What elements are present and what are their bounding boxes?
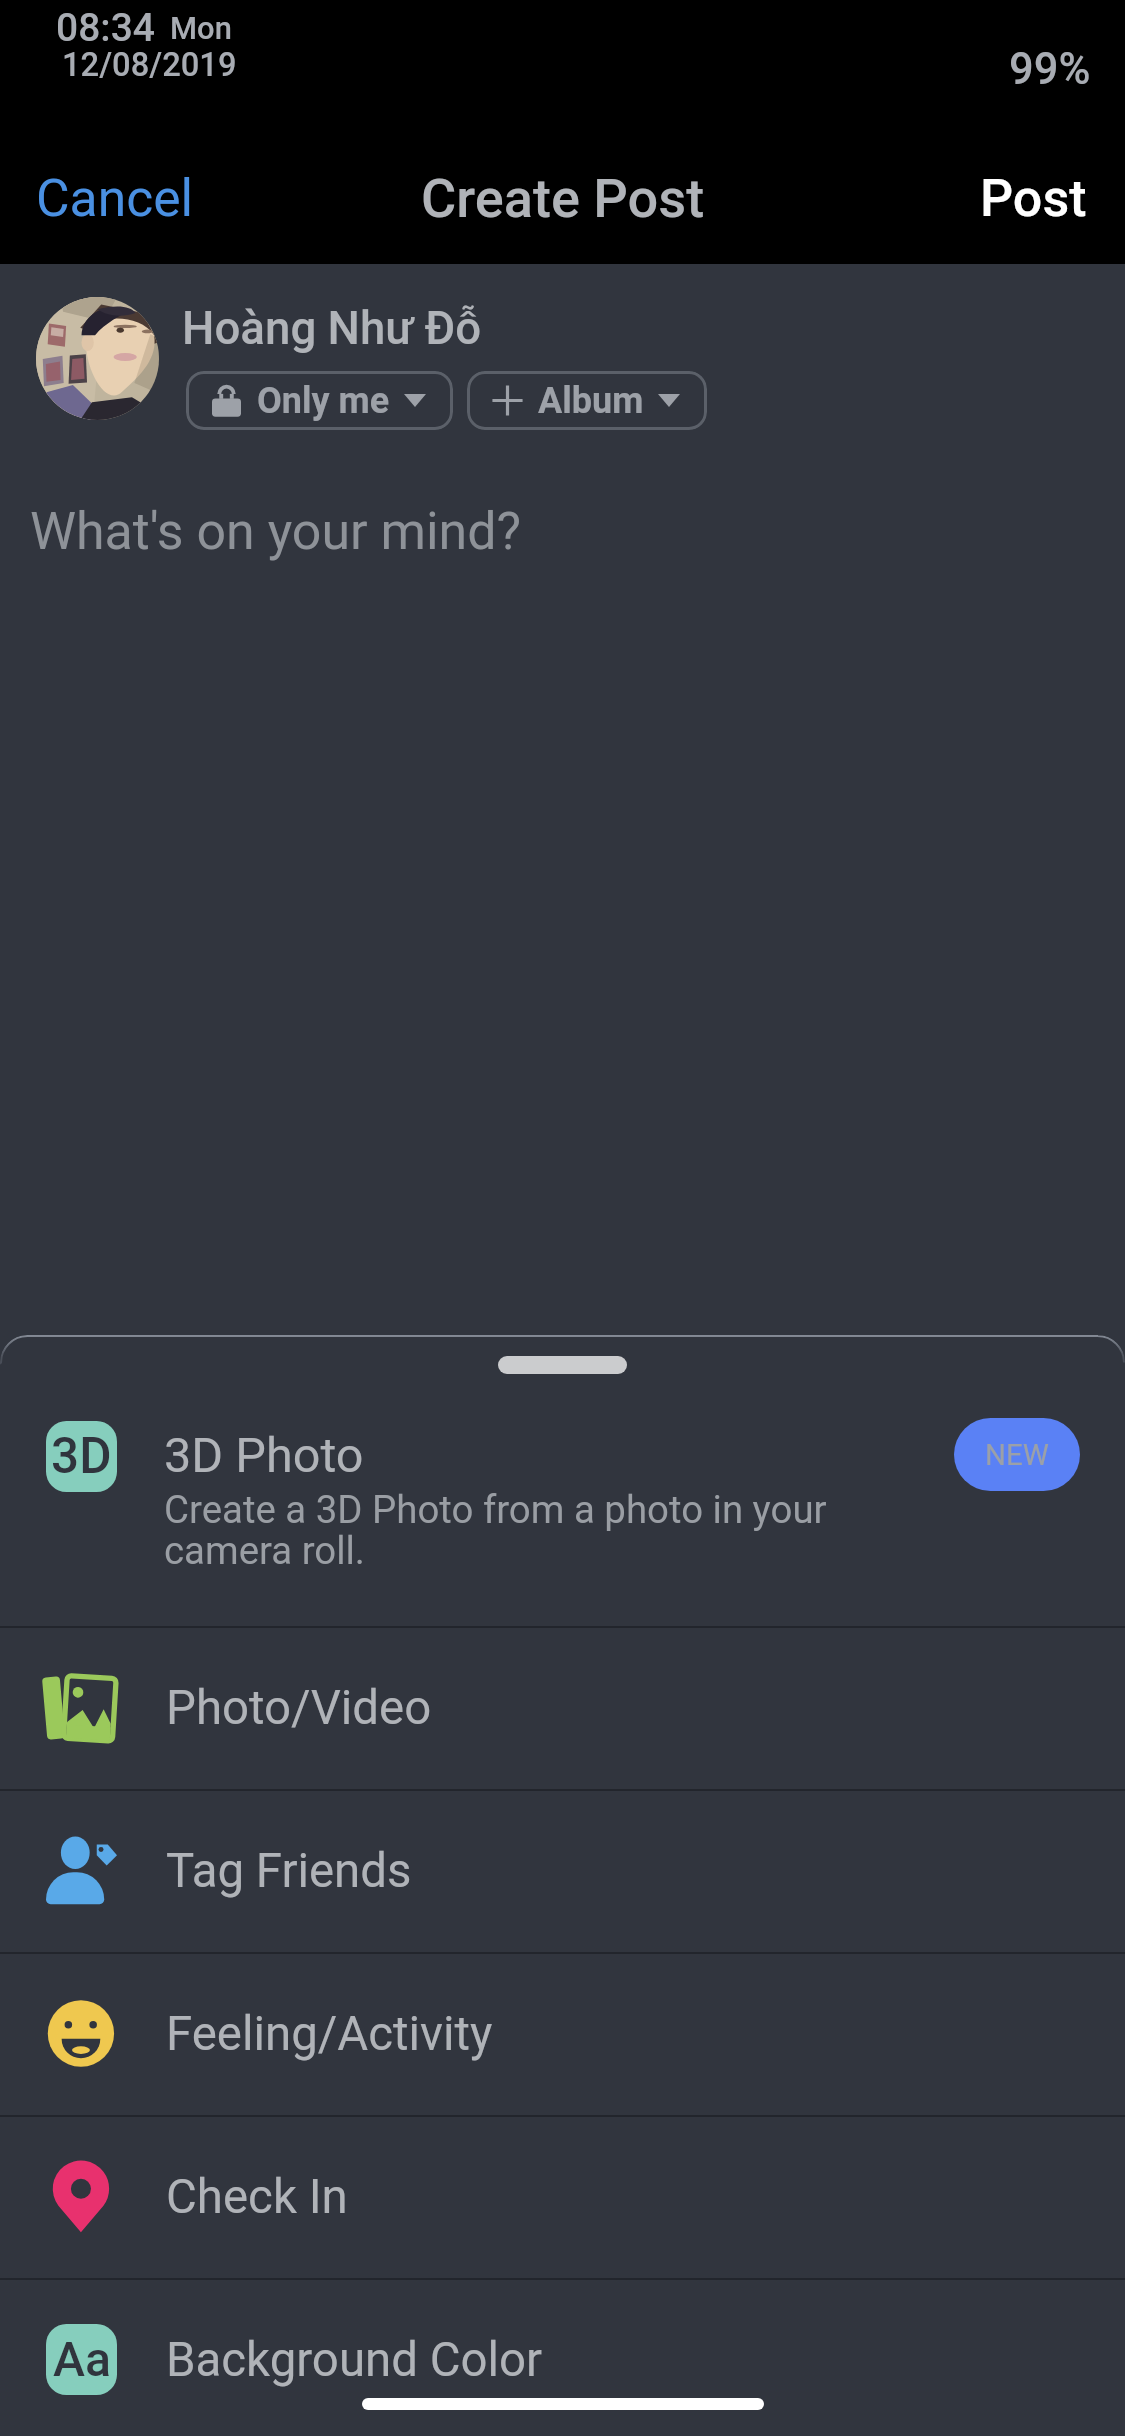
- button[interactable]: Profile photo: [36, 297, 159, 420]
- staticText: Tag Friends: [166, 1843, 412, 1899]
- staticText: Cancel: [36, 168, 194, 228]
- staticText: Create a 3D Photo from a photo in your c…: [164, 1487, 827, 1573]
- button[interactable]: Album: [467, 371, 707, 430]
- button[interactable]: Aa: [0, 2278, 1125, 2436]
- staticText: 08:34: [56, 5, 156, 51]
- staticText: Hoàng Như Đỗ: [182, 302, 482, 355]
- staticText: 3D: [51, 1427, 112, 1485]
- staticText: What's on your mind?: [30, 501, 522, 562]
- button[interactable]: Check In: [0, 2115, 1125, 2278]
- button[interactable]: New feature: [954, 1418, 1080, 1491]
- staticText: Post: [980, 168, 1087, 229]
- button[interactable]: Photo/Video: [0, 1626, 1125, 1789]
- button[interactable]: Feeling/Activity: [0, 1952, 1125, 2115]
- staticText: Create Post: [421, 167, 705, 230]
- button[interactable]: Tag Friends: [0, 1789, 1125, 1952]
- staticText: Background Color: [166, 2332, 543, 2388]
- staticText: NEW: [985, 1438, 1049, 1472]
- staticText: Only me: [257, 380, 390, 422]
- button[interactable]: 3D: [0, 1335, 1125, 1626]
- staticText: 12/08/2019: [62, 46, 237, 84]
- staticText: Check In: [166, 2169, 348, 2225]
- staticText: Photo/Video: [166, 1680, 432, 1736]
- button[interactable]: Cancel: [0, 141, 230, 255]
- staticText: 99%: [1009, 44, 1091, 95]
- staticText: Feeling/Activity: [166, 2006, 493, 2062]
- staticText: Aa: [53, 2331, 111, 2387]
- button[interactable]: Only me: [186, 371, 453, 430]
- staticText: Album: [538, 380, 644, 422]
- staticText: 3D Photo: [164, 1427, 364, 1484]
- staticText: Mon: [170, 10, 232, 46]
- button[interactable]: Post: [942, 141, 1125, 256]
